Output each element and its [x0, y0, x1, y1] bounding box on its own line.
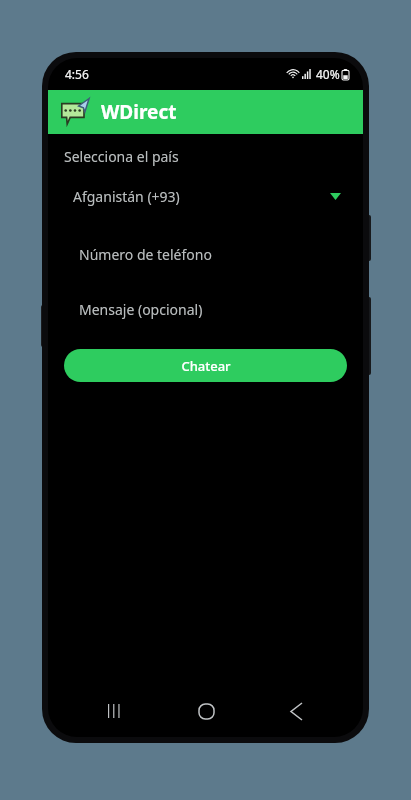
other: Abrir lista de países [330, 193, 341, 200]
staticText: Número de teléfono [79, 245, 212, 264]
staticText: Mensaje (opcional) [79, 300, 203, 319]
staticText: 4:56 [65, 66, 89, 82]
button[interactable]: Número de teléfono [48, 238, 363, 270]
button[interactable]: Chatear [64, 349, 347, 382]
staticText: 40% [316, 66, 340, 82]
button[interactable]: Afganistán (+93) [48, 179, 363, 213]
button[interactable]: Inicio [182, 687, 230, 735]
staticText: WDirect [101, 99, 177, 125]
button[interactable]: Atrás [272, 687, 320, 735]
staticText: Afganistán (+93) [73, 187, 180, 206]
button[interactable]: Recientes [91, 687, 139, 735]
staticText: Selecciona el país [64, 147, 179, 166]
staticText: Chatear [181, 357, 231, 375]
button[interactable]: Mensaje (opcional) [48, 293, 363, 325]
